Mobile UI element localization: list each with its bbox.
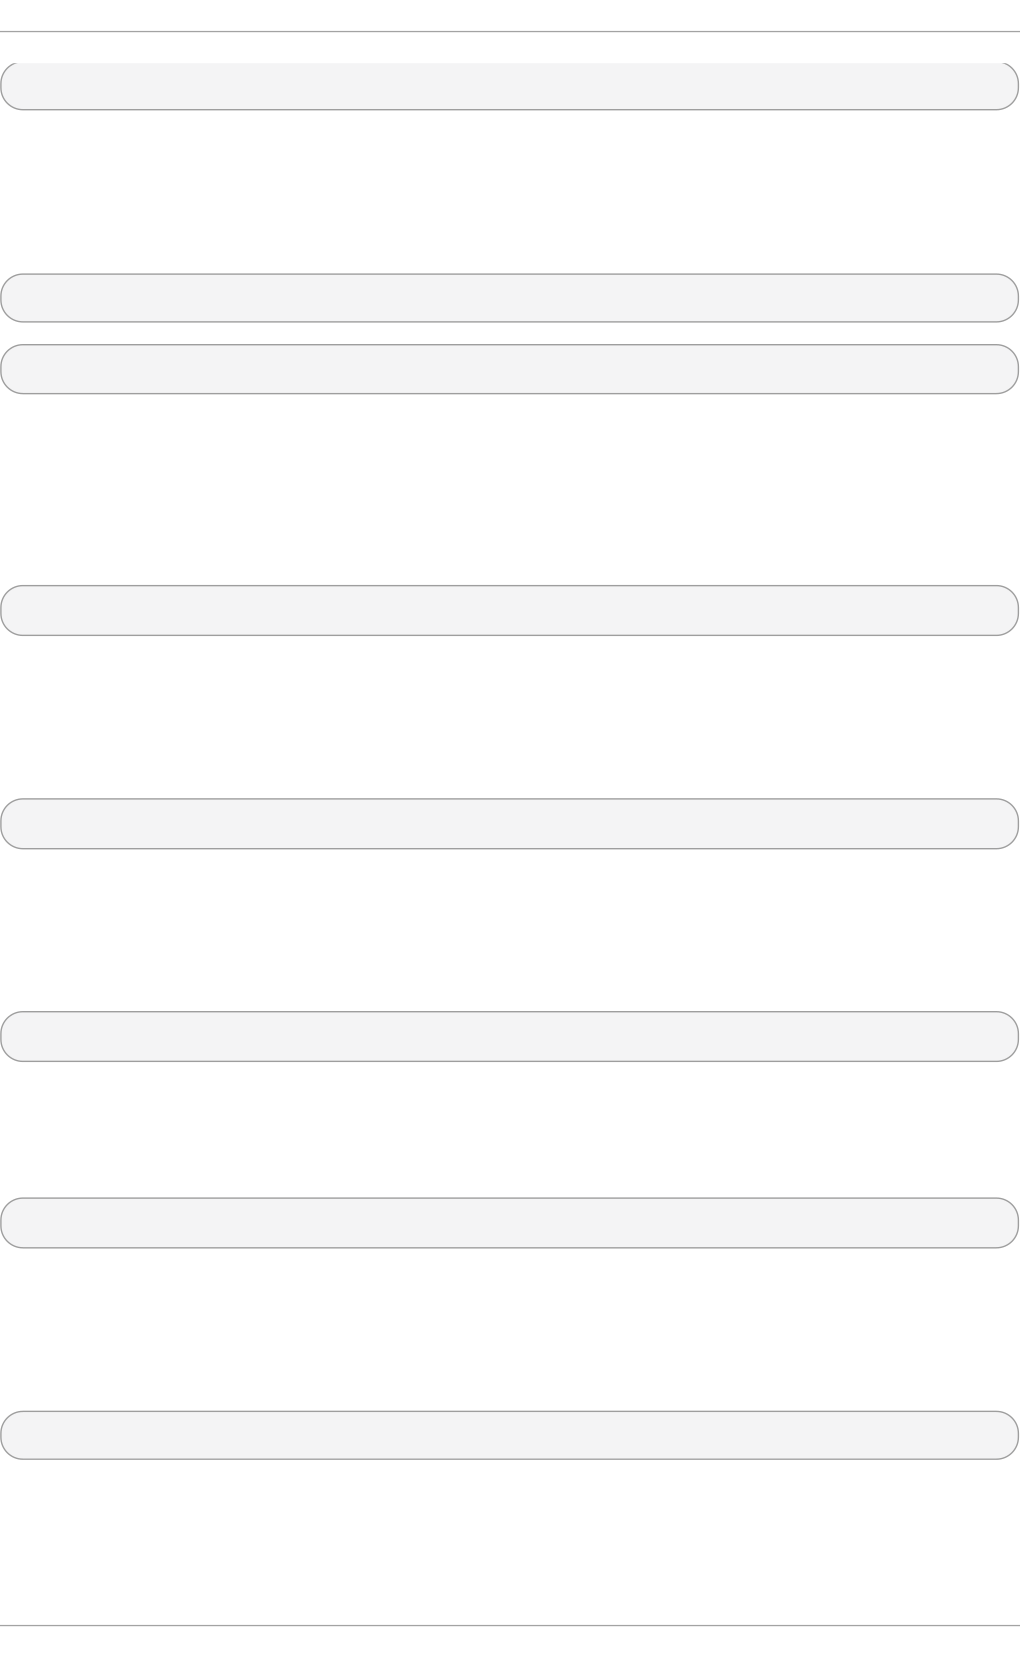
button[interactable]: Loading item 5 bbox=[0, 799, 1020, 849]
button[interactable]: Loading item 4 bbox=[0, 586, 1020, 635]
button[interactable]: Loading item 1 bbox=[0, 62, 1020, 110]
button[interactable]: Loading item 3 bbox=[0, 345, 1020, 394]
button[interactable]: Loading item 6 bbox=[0, 1012, 1020, 1061]
button[interactable]: Loading item 2 bbox=[0, 274, 1020, 322]
button[interactable]: Loading item 8 bbox=[0, 1411, 1020, 1459]
button[interactable]: Loading item 7 bbox=[0, 1198, 1020, 1248]
